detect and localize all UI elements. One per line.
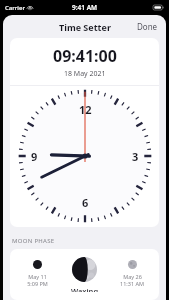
- staticText: Time Setter: [59, 21, 111, 33]
- button[interactable]: 09:41:00: [10, 38, 159, 227]
- staticText: 18 May 2021: [64, 69, 106, 79]
- staticText: 5:09 PM: [27, 280, 48, 287]
- staticText: 12: [79, 102, 92, 117]
- button[interactable]: May 11: [10, 249, 159, 300]
- staticText: Carrier: [5, 4, 25, 12]
- button[interactable]: Done: [129, 16, 166, 37]
- other: Waxing Crescent moon: [72, 257, 97, 282]
- staticText: Done: [137, 21, 158, 32]
- staticText: 9:41 AM: [72, 3, 98, 12]
- staticText: 6: [82, 195, 89, 210]
- staticText: Waxing Crescent: [58, 286, 111, 292]
- staticText: 09:41:00: [53, 45, 117, 67]
- staticText: MOON PHASE: [12, 237, 55, 245]
- staticText: 3: [132, 149, 139, 164]
- staticText: May 11: [28, 273, 47, 280]
- staticText: May 26: [123, 273, 142, 280]
- staticText: 9: [31, 149, 38, 164]
- staticText: 11:31 AM: [120, 280, 144, 287]
